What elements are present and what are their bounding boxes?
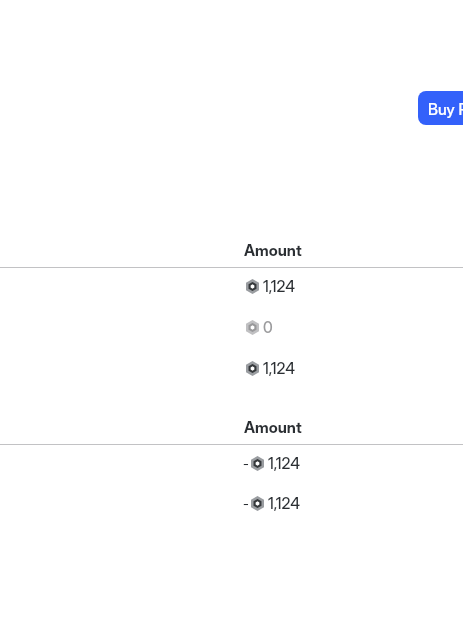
staticText: -	[243, 496, 249, 512]
button[interactable]: Token	[245, 277, 295, 296]
staticText: -	[243, 456, 249, 472]
button[interactable]: Amount	[244, 418, 302, 437]
staticText: 1,124	[268, 494, 300, 513]
staticText: Amount	[244, 241, 302, 260]
button[interactable]: Token	[245, 359, 295, 378]
staticText: Amount	[244, 418, 302, 437]
staticText: 0	[263, 318, 273, 337]
button[interactable]: Token	[245, 318, 273, 337]
other: Token	[250, 496, 265, 511]
staticText: 1,124	[268, 454, 300, 473]
other: Token	[245, 361, 260, 376]
button[interactable]: Buy Pro	[418, 91, 463, 125]
staticText: 1,124	[263, 277, 295, 296]
staticText: Buy Pro	[428, 100, 463, 119]
other: Token	[245, 320, 260, 335]
button[interactable]: -	[243, 494, 300, 513]
button[interactable]: Amount	[244, 241, 302, 260]
button[interactable]: -	[243, 454, 300, 473]
other: Token	[245, 279, 260, 294]
other: Token	[250, 456, 265, 471]
staticText: 1,124	[263, 359, 295, 378]
